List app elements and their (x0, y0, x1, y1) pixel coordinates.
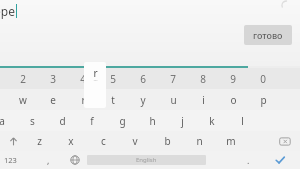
button[interactable]: 4 (68, 68, 98, 89)
staticText: v (132, 134, 138, 148)
staticText: r (93, 66, 98, 80)
button[interactable]: n (183, 131, 215, 151)
staticText: , (47, 154, 50, 166)
staticText: готово (253, 29, 283, 41)
button[interactable]: z (23, 131, 55, 151)
button[interactable]: m (215, 131, 247, 151)
staticText: 3 (50, 72, 56, 86)
staticText: . (247, 154, 250, 166)
staticText: n (196, 134, 203, 148)
button[interactable]: 3 (38, 68, 68, 89)
button[interactable]: 0 (248, 68, 278, 89)
button[interactable]: w (8, 89, 38, 110)
button[interactable]: f (77, 110, 107, 131)
staticText: g (119, 114, 126, 128)
button[interactable]: v (119, 131, 151, 151)
staticText: m (226, 134, 236, 148)
button[interactable]: 123 (4, 151, 30, 169)
staticText: w (19, 93, 27, 107)
button[interactable]: p (248, 89, 278, 110)
button[interactable]: o (218, 89, 248, 110)
button[interactable]: Enter (266, 151, 294, 169)
button[interactable]: epe (0, 1, 17, 21)
staticText: h (149, 114, 156, 128)
staticText: x (68, 134, 74, 148)
button[interactable]: 6 (128, 68, 158, 89)
button[interactable]: k (197, 110, 227, 131)
staticText: b (164, 134, 171, 148)
staticText: 8 (200, 72, 206, 86)
button[interactable]: c (87, 131, 119, 151)
staticText: p (260, 93, 267, 107)
staticText: 2 (20, 72, 26, 86)
staticText: t (111, 93, 115, 107)
button[interactable]: g (107, 110, 137, 131)
button[interactable]: u (158, 89, 188, 110)
button[interactable]: 7 (158, 68, 188, 89)
button[interactable]: Backspace (268, 131, 300, 151)
staticText: English (136, 156, 157, 164)
button[interactable]: English (87, 155, 206, 165)
staticText: 5 (110, 72, 116, 86)
button[interactable]: i (188, 89, 218, 110)
button[interactable]: готово (244, 25, 292, 45)
button[interactable]: t (98, 89, 128, 110)
button[interactable]: j (167, 110, 197, 131)
staticText: z (37, 134, 42, 148)
button[interactable]: e (38, 89, 68, 110)
staticText: a (0, 114, 5, 128)
button[interactable]: b (151, 131, 183, 151)
staticText: c (101, 134, 106, 148)
button[interactable]: 2 (8, 68, 38, 89)
staticText: r (81, 93, 86, 107)
button[interactable]: Change language (62, 151, 88, 169)
button[interactable]: 8 (188, 68, 218, 89)
button[interactable]: 5 (98, 68, 128, 89)
staticText: 6 (140, 72, 146, 86)
staticText: 123 (4, 155, 17, 165)
staticText: y (140, 93, 146, 107)
button[interactable]: d (47, 110, 77, 131)
button[interactable]: x (55, 131, 87, 151)
staticText: u (170, 93, 177, 107)
staticText: 9 (230, 72, 236, 86)
button[interactable]: r (68, 89, 98, 110)
staticText: ··· (93, 77, 98, 84)
staticText: i (202, 93, 205, 107)
staticText: 0 (260, 72, 266, 86)
staticText: k (209, 114, 215, 128)
staticText: 7 (170, 72, 176, 86)
staticText: f (90, 114, 94, 128)
button[interactable]: h (137, 110, 167, 131)
staticText: j (181, 114, 184, 128)
staticText: d (59, 114, 66, 128)
button[interactable]: , (36, 151, 60, 169)
button[interactable]: y (128, 89, 158, 110)
button[interactable]: . (236, 151, 260, 169)
button[interactable]: s (17, 110, 47, 131)
staticText: o (230, 93, 237, 107)
button[interactable]: l (227, 110, 257, 131)
staticText: e (50, 93, 56, 107)
button[interactable]: 9 (218, 68, 248, 89)
button[interactable]: a (0, 110, 17, 131)
button[interactable]: Shift (0, 131, 26, 151)
staticText: 4 (80, 72, 86, 86)
staticText: l (241, 114, 244, 128)
staticText: epe (0, 3, 15, 19)
staticText: s (30, 114, 35, 128)
